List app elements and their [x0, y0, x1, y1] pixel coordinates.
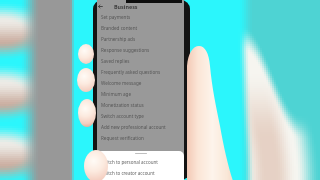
button[interactable]: Back: [97, 3, 104, 10]
staticText: Set payments: [101, 14, 131, 20]
button[interactable]: Monetization status: [97, 99, 184, 110]
staticText: Frequently asked questions: [101, 69, 161, 75]
staticText: Add new professional account: [101, 124, 166, 130]
staticText: Saved replies: [101, 58, 130, 64]
button[interactable]: Partnership ads: [97, 33, 184, 44]
button[interactable]: Welcome message: [97, 77, 184, 88]
staticText: Monetization status: [101, 102, 144, 108]
button[interactable]: Add new professional account: [97, 121, 184, 132]
button[interactable]: Minimum age: [97, 88, 184, 99]
button[interactable]: Switch to personal account: [97, 156, 184, 167]
staticText: Business: [114, 3, 138, 10]
staticText: Minimum age: [101, 91, 131, 97]
staticText: Switch to personal account: [101, 159, 158, 165]
staticText: Request verification: [101, 135, 144, 141]
button[interactable]: Switch to creator account: [97, 167, 184, 178]
button[interactable]: Request verification: [97, 132, 184, 143]
staticText: Switch to creator account: [101, 170, 155, 176]
staticText: Welcome message: [101, 80, 142, 86]
button[interactable]: Frequently asked questions: [97, 66, 184, 77]
staticText: Response suggestions: [101, 47, 150, 53]
button[interactable]: Switch account type: [97, 110, 184, 121]
button[interactable]: Response suggestions: [97, 44, 184, 55]
staticText: Partnership ads: [101, 36, 136, 42]
staticText: Branded content: [101, 25, 138, 31]
staticText: Switch account type: [101, 113, 144, 119]
button[interactable]: Saved replies: [97, 55, 184, 66]
button[interactable]: Set payments: [97, 11, 184, 22]
button[interactable]: Branded content: [97, 22, 184, 33]
